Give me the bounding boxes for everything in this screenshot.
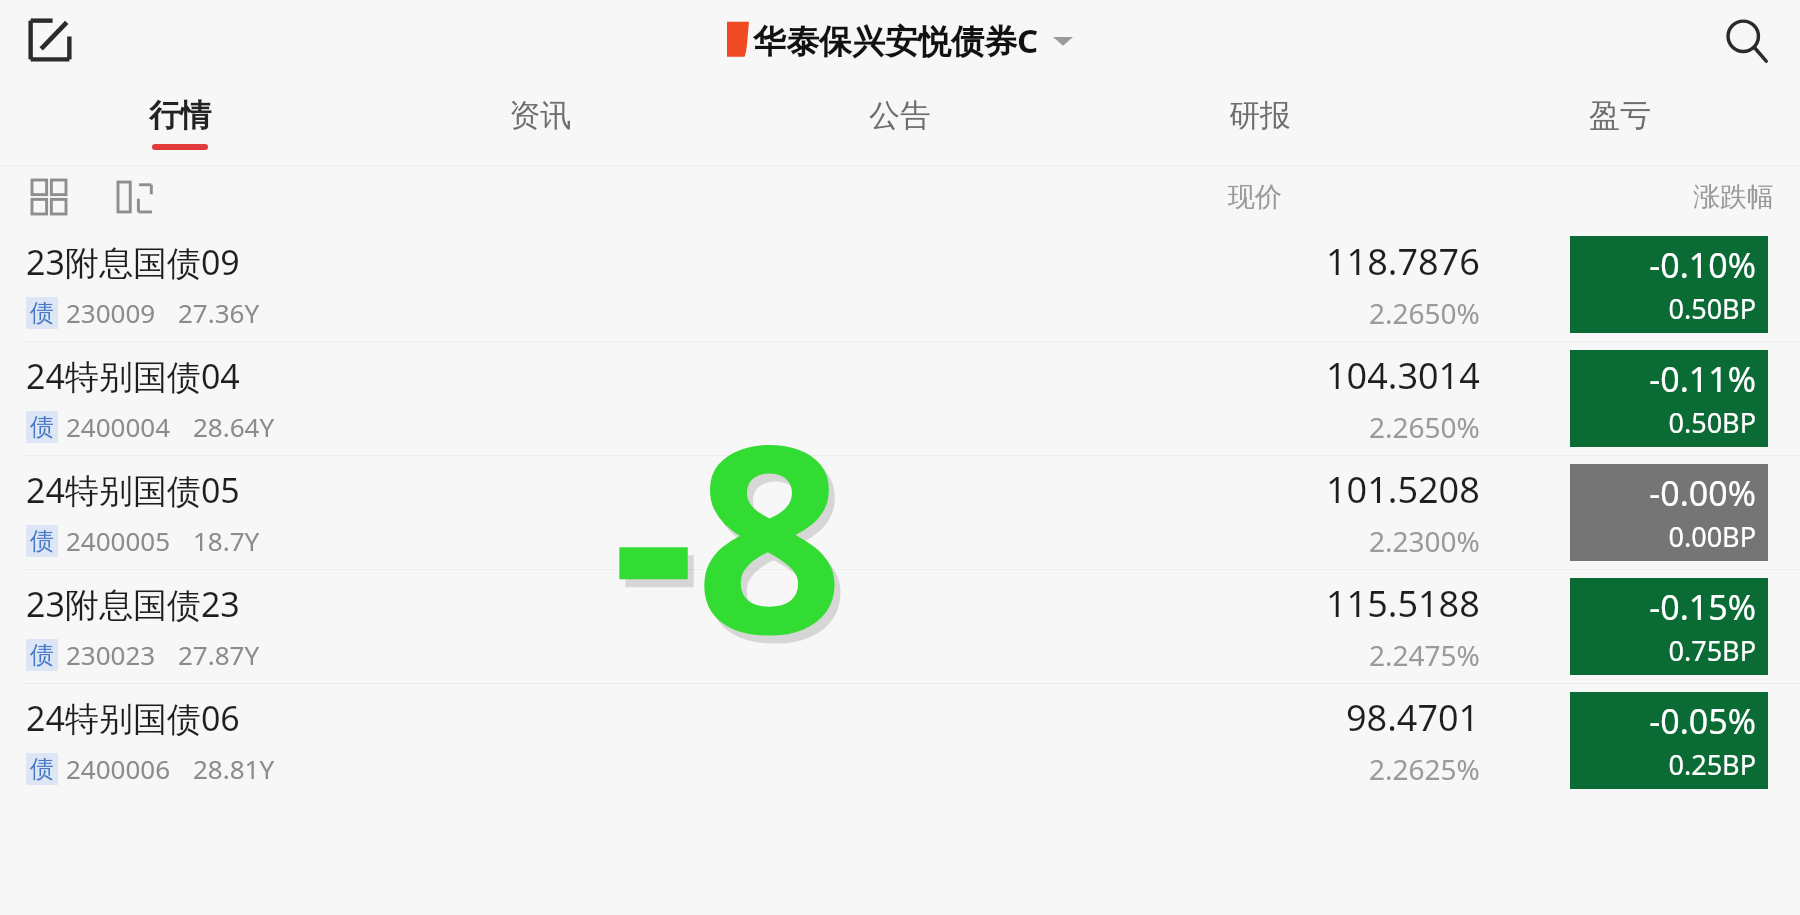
button[interactable]: 24特别国债04 — [0, 342, 1800, 455]
staticText: 2.2300% — [1369, 522, 1480, 560]
button[interactable]: 24特别国债05 — [0, 456, 1800, 569]
staticText: 行情 — [149, 96, 211, 135]
staticText: 230009 — [66, 295, 156, 330]
staticText: 27.87Y — [178, 637, 260, 672]
staticText: 2.2650% — [1369, 294, 1480, 332]
staticText: 24特别国债04 — [26, 353, 240, 399]
staticText: 118.7876 — [1326, 237, 1480, 286]
staticText: 0.25BP — [1668, 746, 1756, 783]
button[interactable]: Grid view — [22, 170, 76, 224]
button[interactable]: Edit — [14, 4, 86, 76]
staticText: 230023 — [66, 637, 156, 672]
staticText: 债 — [30, 754, 54, 784]
staticText: 债 — [30, 526, 54, 556]
staticText: -0.05% — [1649, 698, 1756, 744]
staticText: -0.00% — [1649, 470, 1756, 516]
staticText: 28.81Y — [193, 751, 275, 786]
staticText: 104.3014 — [1326, 351, 1480, 400]
staticText: 27.36Y — [178, 295, 260, 330]
staticText: 公告 — [869, 96, 931, 135]
button[interactable]: 24特别国债06 — [0, 684, 1800, 797]
staticText: -8 — [612, 355, 844, 709]
staticText: 2400004 — [66, 409, 171, 444]
staticText: 涨跌幅 — [1693, 180, 1774, 214]
staticText: 2.2625% — [1369, 750, 1480, 788]
staticText: -8 — [618, 363, 850, 717]
staticText: 23附息国债23 — [26, 581, 240, 627]
staticText: 债 — [30, 412, 54, 442]
staticText: 研报 — [1229, 96, 1291, 135]
staticText: 98.4701 — [1346, 693, 1480, 742]
staticText: -0.11% — [1649, 356, 1756, 402]
staticText: -0.10% — [1649, 242, 1756, 288]
staticText: 债 — [30, 640, 54, 670]
staticText: 2.2475% — [1369, 636, 1480, 674]
staticText: 115.5188 — [1326, 579, 1480, 628]
staticText: 华泰保兴安悦债券C — [753, 18, 1039, 63]
staticText: 2400005 — [66, 523, 171, 558]
staticText: 24特别国债06 — [26, 695, 240, 741]
button[interactable]: 公告 — [720, 80, 1080, 165]
staticText: 盈亏 — [1589, 96, 1651, 135]
staticText: 现价 — [1228, 180, 1282, 214]
button[interactable]: 23附息国债23 — [0, 570, 1800, 683]
staticText: 0.00BP — [1668, 518, 1756, 555]
staticText: -0.15% — [1649, 584, 1756, 630]
button[interactable]: Switch columns — [108, 170, 162, 224]
staticText: 28.64Y — [193, 409, 275, 444]
staticText: 0.75BP — [1668, 632, 1756, 669]
staticText: 0.50BP — [1668, 290, 1756, 327]
staticText: 18.7Y — [193, 523, 260, 558]
button[interactable]: 行情 — [0, 80, 360, 165]
staticText: 0.50BP — [1668, 404, 1756, 441]
staticText: 101.5208 — [1326, 465, 1480, 514]
staticText: 2400006 — [66, 751, 171, 786]
staticText: 24特别国债05 — [26, 467, 240, 513]
button[interactable]: 盈亏 — [1440, 80, 1800, 165]
button[interactable]: 研报 — [1080, 80, 1440, 165]
staticText: 资讯 — [509, 96, 571, 135]
staticText: 债 — [30, 298, 54, 328]
staticText: 23附息国债09 — [26, 239, 240, 285]
button[interactable]: Search — [1710, 4, 1782, 76]
button[interactable]: 资讯 — [360, 80, 720, 165]
button[interactable]: 23附息国债09 — [0, 228, 1800, 341]
staticText: 2.2650% — [1369, 408, 1480, 446]
